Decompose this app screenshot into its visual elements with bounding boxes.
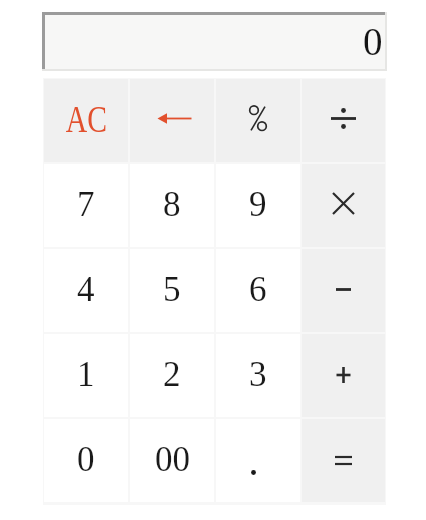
button[interactable]: AC [43, 78, 129, 163]
staticText: 2 [163, 355, 181, 394]
button[interactable] [215, 78, 301, 163]
button[interactable] [301, 78, 386, 163]
staticText: 4 [77, 270, 95, 309]
button[interactable]: 8 [129, 163, 215, 248]
button[interactable]: 5 [129, 248, 215, 333]
staticText: 6 [249, 270, 267, 309]
button[interactable]: 2 [129, 333, 215, 418]
staticText: AC [66, 98, 107, 140]
button[interactable]: 3 [215, 333, 301, 418]
button[interactable] [301, 418, 386, 503]
button[interactable] [301, 248, 386, 333]
staticText: 7 [77, 185, 95, 224]
staticText: 3 [249, 355, 267, 394]
staticText: 00 [155, 440, 190, 479]
staticText: 1 [77, 355, 95, 394]
staticText: 9 [249, 185, 267, 224]
button[interactable] [301, 333, 386, 418]
button[interactable]: 00 [129, 418, 215, 503]
staticText: 0 [363, 20, 383, 63]
button[interactable]: 6 [215, 248, 301, 333]
staticText: 8 [163, 185, 181, 224]
staticText: 5 [163, 270, 181, 309]
button[interactable]: 9 [215, 163, 301, 248]
button[interactable]: 7 [43, 163, 129, 248]
button[interactable]: 1 [43, 333, 129, 418]
button[interactable] [129, 78, 215, 163]
button[interactable]: 4 [43, 248, 129, 333]
button[interactable] [215, 418, 301, 503]
button[interactable]: 0 [43, 418, 129, 503]
button[interactable] [301, 163, 386, 248]
staticText: 0 [77, 440, 95, 479]
